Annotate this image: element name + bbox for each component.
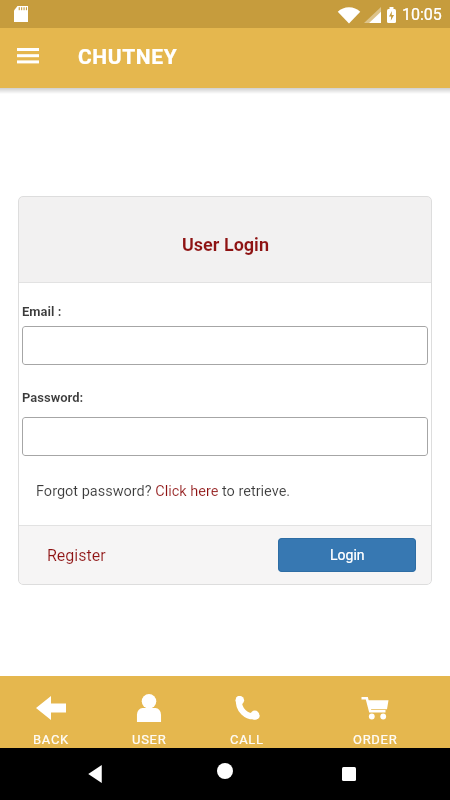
button[interactable] (22, 417, 428, 456)
staticText: User Login (182, 234, 269, 255)
button[interactable] (81, 760, 109, 788)
button[interactable] (0, 28, 56, 88)
button[interactable]: Register (47, 546, 106, 565)
button[interactable]: BACK (6, 676, 96, 748)
button[interactable]: USER (104, 676, 194, 748)
button[interactable]: Forgot password? Click here to retrieve. (36, 483, 291, 500)
button[interactable]: ORDER (330, 676, 420, 748)
button[interactable] (22, 326, 428, 365)
staticText: 10:05 (402, 5, 442, 24)
staticText: Email : (22, 304, 62, 319)
staticText: Forgot password? Click here to retrieve. (36, 483, 291, 500)
button[interactable] (211, 757, 239, 785)
button[interactable] (335, 760, 363, 788)
button[interactable]: CALL (202, 676, 292, 748)
staticText: CHUTNEY (78, 45, 178, 70)
button[interactable]: Login (278, 538, 416, 572)
staticText: ORDER (353, 732, 398, 747)
staticText: USER (132, 732, 167, 747)
staticText: Register (47, 546, 106, 565)
staticText: CALL (230, 732, 264, 747)
staticText: Password: (22, 390, 84, 405)
staticText: BACK (33, 732, 69, 747)
staticText: Login (330, 547, 365, 563)
